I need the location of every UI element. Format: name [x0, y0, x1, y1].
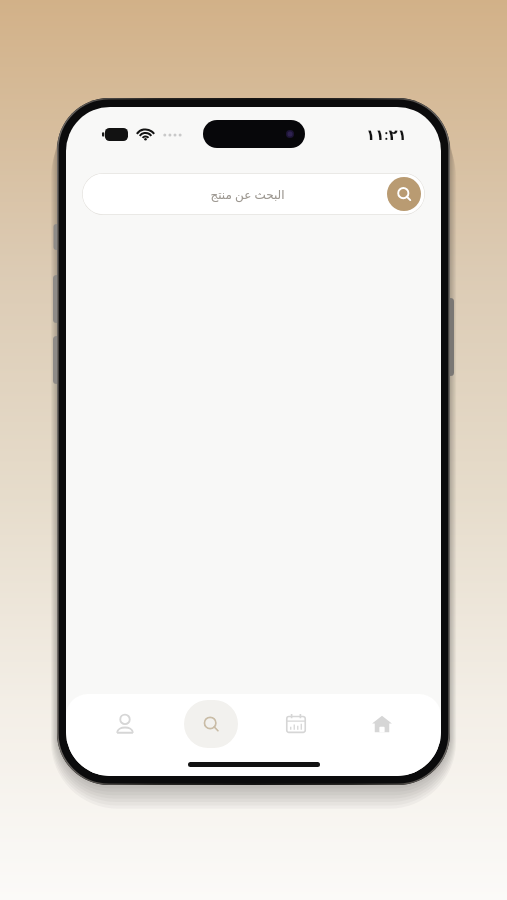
- button[interactable]: Profile: [98, 700, 152, 748]
- staticText: ١١:٢١: [366, 124, 407, 144]
- button[interactable]: Home: [355, 700, 409, 748]
- button[interactable]: Orders: [269, 700, 323, 748]
- button[interactable]: Search: [184, 700, 238, 748]
- button[interactable]: Search: [387, 177, 421, 211]
- staticText: البحث عن منتج: [210, 186, 285, 202]
- button[interactable]: البحث عن منتج: [82, 173, 425, 215]
